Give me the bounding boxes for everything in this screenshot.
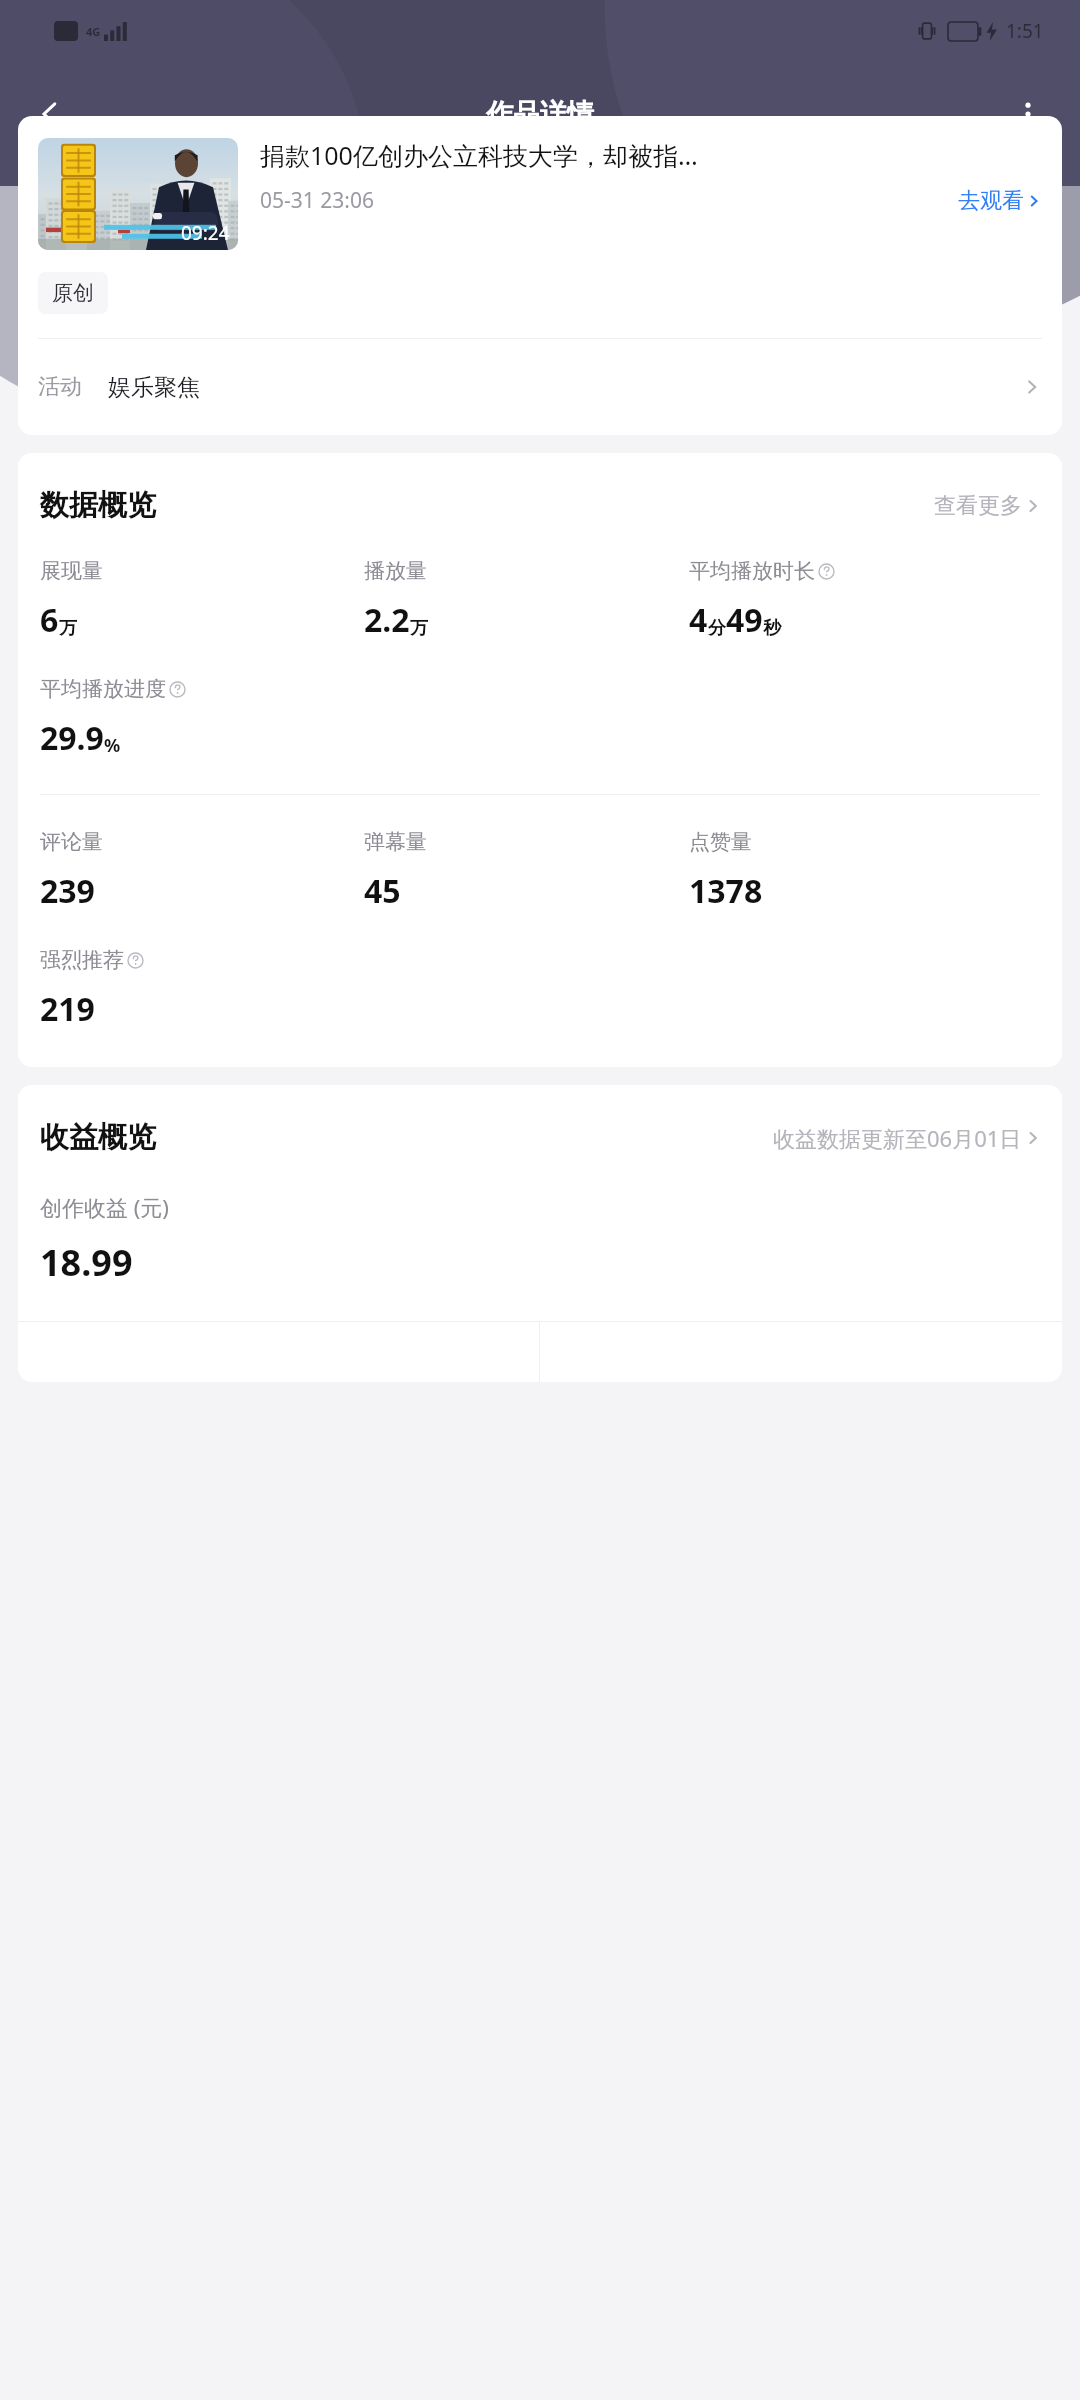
button[interactable]: 数据概览 <box>18 453 1062 530</box>
staticText: 点赞量 <box>689 829 752 855</box>
staticText: 1:51 <box>1006 18 1044 44</box>
staticText: 查看更多 <box>934 492 1022 520</box>
staticText: 捐款100亿创办公立科技大学，却被指… <box>260 138 698 172</box>
staticText: 分 <box>708 617 726 640</box>
staticText: 活动 <box>38 373 82 401</box>
staticText: 秒 <box>763 617 781 640</box>
staticText: 收益概览 <box>40 1119 156 1156</box>
staticText: 239 <box>40 869 95 913</box>
staticText: 4G <box>86 24 101 39</box>
staticText: 18.99 <box>40 1238 133 1287</box>
staticText: 评论量 <box>40 829 103 855</box>
button[interactable]: 09:24 <box>38 138 1042 250</box>
staticText: 万 <box>59 617 77 640</box>
staticText: 创作收益 (元) <box>40 1192 169 1222</box>
button[interactable]: Back <box>18 82 82 146</box>
button[interactable]: 收益概览 <box>18 1085 1062 1162</box>
button[interactable]: More options <box>996 82 1060 146</box>
staticText: 49 <box>726 598 763 642</box>
staticText: % <box>104 733 121 758</box>
staticText: 强烈推荐 <box>40 947 124 973</box>
staticText: 数据概览 <box>40 487 156 524</box>
staticText: 娱乐聚焦 <box>108 373 200 402</box>
staticText: 平均播放时长 <box>689 558 815 584</box>
staticText: 2.2 <box>364 598 410 642</box>
staticText: 作品详情 <box>486 97 594 131</box>
staticText: 05-31 23:06 <box>260 186 374 215</box>
staticText: 播放量 <box>364 558 427 584</box>
button[interactable]: 活动 <box>18 339 1062 435</box>
staticText: 弹幕量 <box>364 829 427 855</box>
staticText: 45 <box>364 869 401 913</box>
staticText: 万 <box>410 617 428 640</box>
staticText: 展现量 <box>40 558 103 584</box>
staticText: 4 <box>689 598 708 642</box>
staticText: 09:24 <box>181 220 230 246</box>
staticText: 219 <box>40 987 95 1031</box>
staticText: 去观看 <box>958 187 1024 215</box>
staticText: 6 <box>40 598 59 642</box>
staticText: 平均播放进度 <box>40 676 166 702</box>
staticText: 1378 <box>689 869 763 913</box>
staticText: 收益数据更新至06月01日 <box>773 1123 1022 1153</box>
staticText: 原创 <box>52 280 94 306</box>
staticText: 29.9 <box>40 716 104 760</box>
